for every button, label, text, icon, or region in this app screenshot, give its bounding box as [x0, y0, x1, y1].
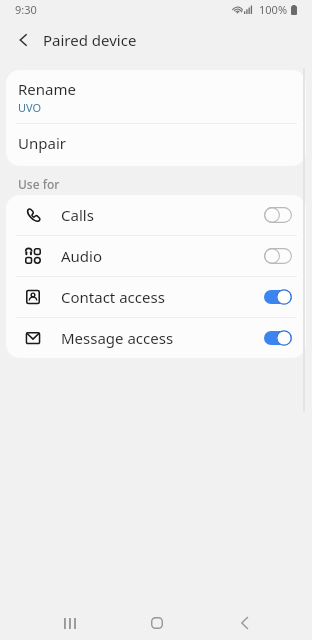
- button[interactable]: Home: [135, 606, 179, 640]
- button[interactable]: Recent apps: [48, 606, 92, 640]
- button[interactable]: Contact access: [6, 277, 306, 317]
- staticText: Use for: [18, 176, 60, 192]
- staticText: 100%: [259, 2, 288, 17]
- button[interactable]: Calls: [6, 195, 306, 235]
- button[interactable]: Message access: [6, 318, 306, 358]
- button[interactable]: Rename: [6, 70, 306, 123]
- staticText: UVO: [18, 100, 42, 115]
- staticText: Unpair: [18, 133, 66, 153]
- button[interactable]: Unpair: [6, 124, 306, 166]
- staticText: Contact access: [61, 287, 165, 307]
- button[interactable]: Audio: [6, 236, 306, 276]
- staticText: Paired device: [43, 30, 137, 50]
- staticText: Calls: [61, 205, 94, 225]
- button[interactable]: Navigate up: [10, 27, 36, 53]
- staticText: Audio: [61, 246, 103, 266]
- button[interactable]: Back: [222, 606, 266, 640]
- staticText: Rename: [18, 79, 76, 99]
- staticText: Message access: [61, 328, 174, 348]
- staticText: 9:30: [15, 2, 37, 17]
